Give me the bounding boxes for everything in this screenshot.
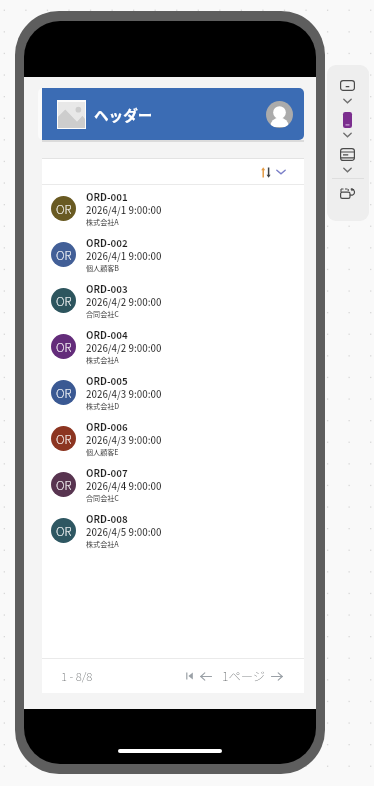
staticText: 2026/4/1 9:00:00 — [86, 249, 162, 263]
button[interactable]: OR — [42, 415, 304, 461]
staticText: ORD-001 — [86, 190, 128, 204]
staticText: ORD-003 — [86, 282, 128, 296]
staticText: ORD-008 — [86, 512, 128, 526]
staticText: 株式会社D — [86, 401, 120, 411]
button[interactable]: ヘッダー — [42, 88, 304, 140]
staticText: 2026/4/3 9:00:00 — [86, 433, 162, 447]
staticText: 合同会社C — [86, 493, 119, 503]
button[interactable]: OR — [42, 231, 304, 277]
staticText: OR — [56, 430, 72, 447]
staticText: 個人顧客E — [86, 447, 119, 457]
button[interactable]: OR — [42, 277, 304, 323]
staticText: ORD-004 — [86, 328, 128, 342]
button[interactable]: Sort options — [275, 166, 287, 178]
staticText: 2026/4/2 9:00:00 — [86, 295, 162, 309]
staticText: 2026/4/4 9:00:00 — [86, 479, 162, 493]
staticText: OR — [56, 522, 72, 539]
staticText: 株式会社A — [86, 355, 119, 365]
staticText: 合同会社C — [86, 309, 119, 319]
staticText: OR — [56, 338, 72, 355]
button[interactable]: OR — [42, 323, 304, 369]
staticText: OR — [56, 384, 72, 401]
button[interactable]: System UI — [340, 148, 355, 161]
staticText: OR — [56, 292, 72, 309]
button[interactable]: OR — [42, 461, 304, 507]
staticText: OR — [56, 476, 72, 493]
staticText: 1ページ — [222, 667, 266, 685]
staticText: 2026/4/3 9:00:00 — [86, 387, 162, 401]
button[interactable]: OR — [42, 185, 304, 231]
staticText: 個人顧客B — [86, 263, 120, 273]
staticText: 2026/4/2 9:00:00 — [86, 341, 162, 355]
staticText: OR — [56, 246, 72, 263]
staticText: 株式会社A — [86, 217, 119, 227]
staticText: ORD-007 — [86, 466, 128, 480]
staticText: ORD-006 — [86, 420, 128, 434]
button[interactable]: Previous page — [197, 668, 214, 685]
button[interactable]: Screen size — [340, 80, 355, 91]
button[interactable]: First page — [182, 669, 196, 683]
staticText: ORD-005 — [86, 374, 128, 388]
button[interactable]: Device — [343, 112, 352, 128]
button[interactable]: OR — [42, 507, 304, 553]
staticText: 1 - 8/8 — [61, 668, 93, 685]
button[interactable]: OR — [42, 369, 304, 415]
button[interactable]: Rotate — [340, 188, 355, 199]
button[interactable]: Sort — [258, 164, 274, 180]
staticText: OR — [56, 200, 72, 217]
staticText: 株式会社A — [86, 539, 119, 549]
button[interactable]: Account — [266, 101, 293, 128]
button[interactable]: Next page — [268, 668, 285, 685]
staticText: 2026/4/5 9:00:00 — [86, 525, 162, 539]
staticText: ヘッダー — [94, 104, 153, 125]
staticText: ORD-002 — [86, 236, 128, 250]
staticText: 2026/4/1 9:00:00 — [86, 203, 162, 217]
